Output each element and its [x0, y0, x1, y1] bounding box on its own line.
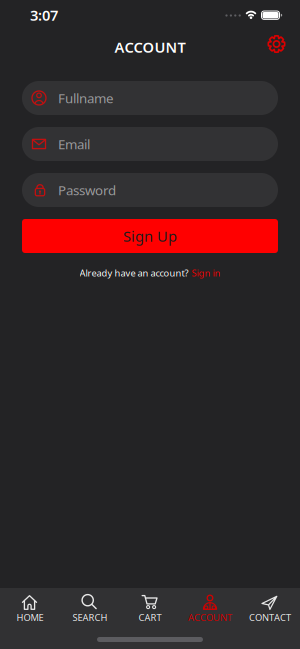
- staticText: SEARCH: [72, 611, 107, 624]
- staticText: CART: [138, 611, 161, 624]
- staticText: Sign Up: [123, 226, 177, 246]
- staticText: Fullname: [58, 89, 114, 107]
- staticText: Sign in: [191, 267, 220, 279]
- staticText: Email: [58, 135, 90, 153]
- staticText: HOME: [16, 611, 43, 624]
- staticText: ACCOUNT: [114, 37, 185, 57]
- staticText: Password: [58, 181, 116, 199]
- staticText: ACCOUNT: [188, 611, 232, 624]
- staticText: 3:07: [30, 5, 58, 25]
- staticText: CONTACT: [249, 611, 291, 624]
- staticText: Already have an account?: [79, 267, 188, 279]
